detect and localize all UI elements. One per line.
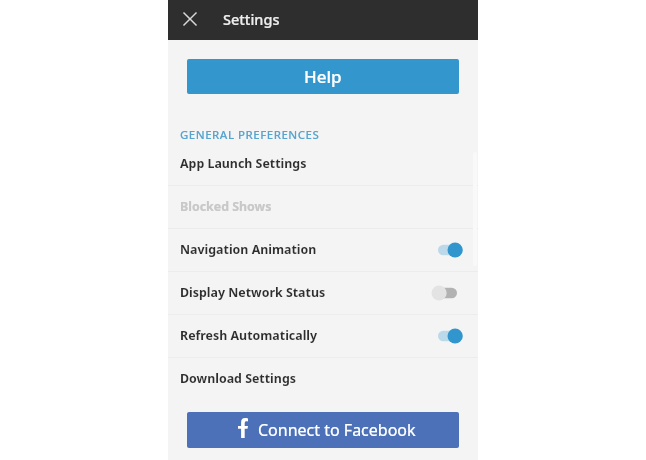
button[interactable]: Blocked Shows [168,185,478,228]
button[interactable]: Display Network Status [428,283,464,303]
button[interactable]: Close [176,5,204,33]
staticText: Settings [223,9,280,29]
staticText: App Launch Settings [180,155,307,172]
staticText: Display Network Status [180,284,326,301]
button[interactable]: Display Network Status [168,271,478,314]
button[interactable]: Refresh Automatically [428,326,464,346]
staticText: GENERAL PREFERENCES [180,127,320,143]
button[interactable]: Download Settings [168,357,478,400]
button[interactable]: Navigation Animation [428,240,464,260]
staticText: Refresh Automatically [180,327,318,344]
staticText: Connect to Facebook [258,419,416,441]
staticText: Blocked Shows [180,198,272,215]
button[interactable]: Help [187,59,459,94]
button[interactable]: Connect to Facebook [187,412,459,448]
staticText: Download Settings [180,370,296,387]
staticText: Navigation Animation [180,241,317,258]
button[interactable]: Navigation Animation [168,228,478,271]
button[interactable]: Refresh Automatically [168,314,478,357]
staticText: Help [304,65,342,88]
button[interactable]: App Launch Settings [168,142,478,185]
